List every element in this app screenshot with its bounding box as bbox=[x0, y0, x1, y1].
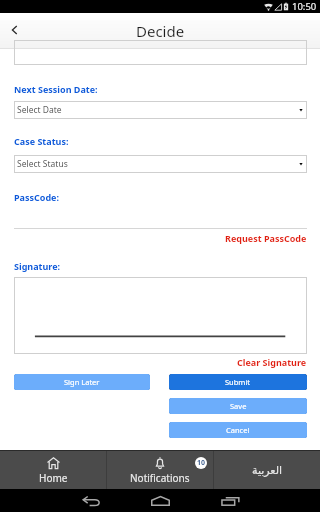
button[interactable]: Sign Later bbox=[14, 374, 150, 390]
button[interactable]: Select Date bbox=[14, 101, 307, 119]
staticText: Cancel bbox=[226, 425, 250, 435]
staticText: Case Status: bbox=[14, 135, 69, 147]
button[interactable]: العربية bbox=[214, 451, 320, 489]
staticText: Decide bbox=[136, 21, 185, 41]
button[interactable]: Home bbox=[0, 451, 106, 489]
button[interactable]: Back bbox=[0, 13, 28, 49]
button[interactable]: Clear Signature bbox=[14, 355, 307, 368]
button[interactable]: Home bbox=[140, 489, 180, 512]
staticText: Home bbox=[39, 471, 68, 485]
button[interactable]: Recent apps bbox=[210, 489, 250, 512]
button[interactable]: Save bbox=[169, 398, 307, 414]
staticText: Clear Signature bbox=[237, 356, 307, 368]
button[interactable]: Back bbox=[71, 489, 111, 512]
staticText: Notifications bbox=[130, 471, 190, 485]
staticText: 10 bbox=[197, 458, 206, 468]
staticText: 10:50 bbox=[292, 0, 317, 13]
button[interactable] bbox=[14, 277, 307, 354]
button[interactable]: Cancel bbox=[169, 422, 307, 438]
staticText: Request PassCode bbox=[225, 232, 307, 244]
staticText: Submit bbox=[225, 377, 251, 387]
button[interactable]: Notifications bbox=[107, 451, 213, 489]
staticText: Next Session Date: bbox=[14, 83, 98, 95]
staticText: Save bbox=[230, 401, 247, 411]
button[interactable]: Submit bbox=[169, 374, 307, 390]
staticText: Sign Later bbox=[64, 377, 100, 387]
staticText: Select Date bbox=[17, 104, 62, 116]
staticText: PassCode: bbox=[14, 191, 60, 203]
staticText: العربية bbox=[252, 464, 283, 477]
button[interactable]: Select Status bbox=[14, 155, 307, 173]
button[interactable]: Request PassCode bbox=[14, 231, 307, 244]
staticText: Signature: bbox=[14, 260, 61, 272]
staticText: Select Status bbox=[17, 158, 68, 170]
